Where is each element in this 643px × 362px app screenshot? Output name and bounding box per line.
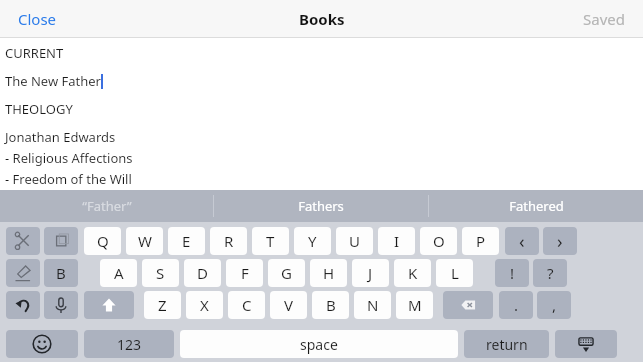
button[interactable]: G [268, 259, 305, 287]
button[interactable]: I [378, 227, 415, 255]
staticText: A [114, 263, 124, 283]
staticText: D [197, 263, 208, 283]
button[interactable]: Undo [6, 291, 40, 319]
button[interactable]: › [543, 227, 577, 255]
staticText: - Freedom of the Will [5, 170, 132, 188]
button[interactable]: J [352, 259, 389, 287]
button[interactable]: P [462, 227, 499, 255]
button[interactable]: M [396, 291, 433, 319]
staticText: N [367, 295, 379, 315]
staticText: . [514, 295, 519, 315]
button[interactable]: ‹ [505, 227, 539, 255]
button[interactable]: E [168, 227, 205, 255]
button[interactable]: “Father” [0, 190, 213, 222]
staticText: S [156, 263, 165, 283]
button[interactable]: 123 [84, 330, 174, 358]
staticText: Books [299, 9, 345, 29]
button[interactable]: Bold [44, 259, 78, 287]
staticText: O [433, 231, 445, 251]
button[interactable]: K [394, 259, 431, 287]
button[interactable]: D [184, 259, 221, 287]
staticText: space [300, 335, 338, 354]
button[interactable]: Fathered [429, 190, 643, 222]
staticText: ! [510, 263, 515, 283]
button[interactable]: W [126, 227, 163, 255]
button[interactable]: Y [294, 227, 331, 255]
staticText: - Religious Affections [5, 149, 133, 167]
staticText: I [394, 231, 400, 251]
staticText: ‹ [519, 229, 525, 254]
button[interactable]: O [420, 227, 457, 255]
button[interactable]: Q [84, 227, 121, 255]
staticText: K [408, 263, 418, 283]
staticText: B [56, 263, 66, 283]
button[interactable]: Saved [577, 5, 631, 33]
button[interactable]: U [336, 227, 373, 255]
button[interactable]: Copy [44, 227, 78, 255]
button[interactable]: Dictate [44, 291, 78, 319]
staticText: Fathers [298, 197, 344, 215]
staticText: G [281, 263, 292, 283]
staticText: T [266, 231, 275, 251]
staticText: return [486, 335, 528, 354]
staticText: R [224, 231, 234, 251]
staticText: X [200, 295, 209, 315]
staticText: B [326, 295, 336, 315]
staticText: Jonathan Edwards [5, 128, 116, 146]
button[interactable]: V [270, 291, 307, 319]
button[interactable]: S [142, 259, 179, 287]
staticText: The New Father [5, 72, 101, 90]
button[interactable]: space [180, 330, 458, 358]
button[interactable]: return [464, 330, 549, 358]
staticText: Z [158, 295, 167, 315]
button[interactable]: X [186, 291, 223, 319]
button[interactable]: T [252, 227, 289, 255]
staticText: Fathered [509, 197, 564, 215]
staticText: › [557, 229, 563, 254]
staticText: , [552, 295, 557, 315]
staticText: Y [308, 231, 317, 251]
staticText: CURRENT [5, 44, 64, 62]
button[interactable]: Fathers [214, 190, 428, 222]
button[interactable]: , [537, 291, 571, 319]
button[interactable]: ? [533, 259, 567, 287]
button[interactable]: Emoji [6, 330, 78, 358]
staticText: W [138, 231, 152, 251]
staticText: P [476, 231, 486, 251]
button[interactable]: B [312, 291, 349, 319]
staticText: L [451, 263, 459, 283]
staticText: Saved [583, 9, 625, 29]
button[interactable]: C [228, 291, 265, 319]
staticText: H [323, 263, 335, 283]
staticText: F [241, 263, 249, 283]
button[interactable]: F [226, 259, 263, 287]
button[interactable]: L [436, 259, 473, 287]
button[interactable]: Close [12, 5, 63, 33]
staticText: C [242, 295, 252, 315]
staticText: M [408, 295, 422, 315]
button[interactable]: R [210, 227, 247, 255]
button[interactable]: A [100, 259, 137, 287]
staticText: THEOLOGY [5, 100, 73, 118]
button[interactable]: N [354, 291, 391, 319]
button[interactable]: Cut [6, 227, 40, 255]
staticText: V [284, 295, 294, 315]
staticText: E [182, 231, 191, 251]
button[interactable]: Hide keyboard [555, 330, 617, 358]
staticText: Q [97, 231, 109, 251]
button[interactable]: Backspace [443, 291, 493, 319]
button[interactable]: . [499, 291, 533, 319]
button[interactable]: ! [495, 259, 529, 287]
staticText: J [368, 263, 373, 283]
staticText: “Father” [82, 197, 132, 215]
button[interactable]: H [310, 259, 347, 287]
button[interactable]: Highlight [6, 259, 40, 287]
button[interactable]: Shift [84, 291, 134, 319]
staticText: U [349, 231, 360, 251]
staticText: 123 [117, 335, 142, 354]
staticText: Close [18, 9, 57, 29]
button[interactable]: Z [144, 291, 181, 319]
staticText: ? [547, 263, 554, 283]
